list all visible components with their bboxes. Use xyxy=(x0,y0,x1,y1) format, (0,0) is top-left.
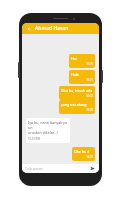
staticText: 10:23 xyxy=(86,94,93,98)
staticText: yang mu atang xyxy=(61,102,87,107)
staticText: 10:21 xyxy=(86,78,93,82)
staticText: Gini bu, besok ada xyxy=(61,88,93,93)
staticText: Ahmad Hasan xyxy=(35,25,69,32)
button[interactable]: Oke bu :) xyxy=(72,147,95,161)
button[interactable]: Iya bu, nanti banyak ya un uruskan dikel… xyxy=(26,118,70,143)
staticText: 10:20 xyxy=(86,62,93,66)
button[interactable]: Send xyxy=(89,165,96,172)
staticText: 10:31 xyxy=(86,155,93,159)
button[interactable]: Halo xyxy=(69,70,95,84)
staticText: Tulis pesan xyxy=(25,166,43,171)
button[interactable]: Gini bu, besok ada xyxy=(59,86,95,100)
staticText: 10:29 WIB xyxy=(28,137,41,141)
staticText: Oke bu :) xyxy=(74,149,90,154)
staticText: Hai xyxy=(71,56,77,61)
button[interactable]: yang mu atang xyxy=(59,100,95,114)
button[interactable]: Tulis pesan xyxy=(25,166,89,171)
staticText: Iya bu, nanti banyak ya un uruskan dikel… xyxy=(28,120,68,135)
button[interactable]: Back xyxy=(25,25,33,33)
button[interactable]: Hai xyxy=(69,54,95,68)
staticText: 10:23 xyxy=(86,108,93,112)
staticText: Halo xyxy=(71,72,79,77)
